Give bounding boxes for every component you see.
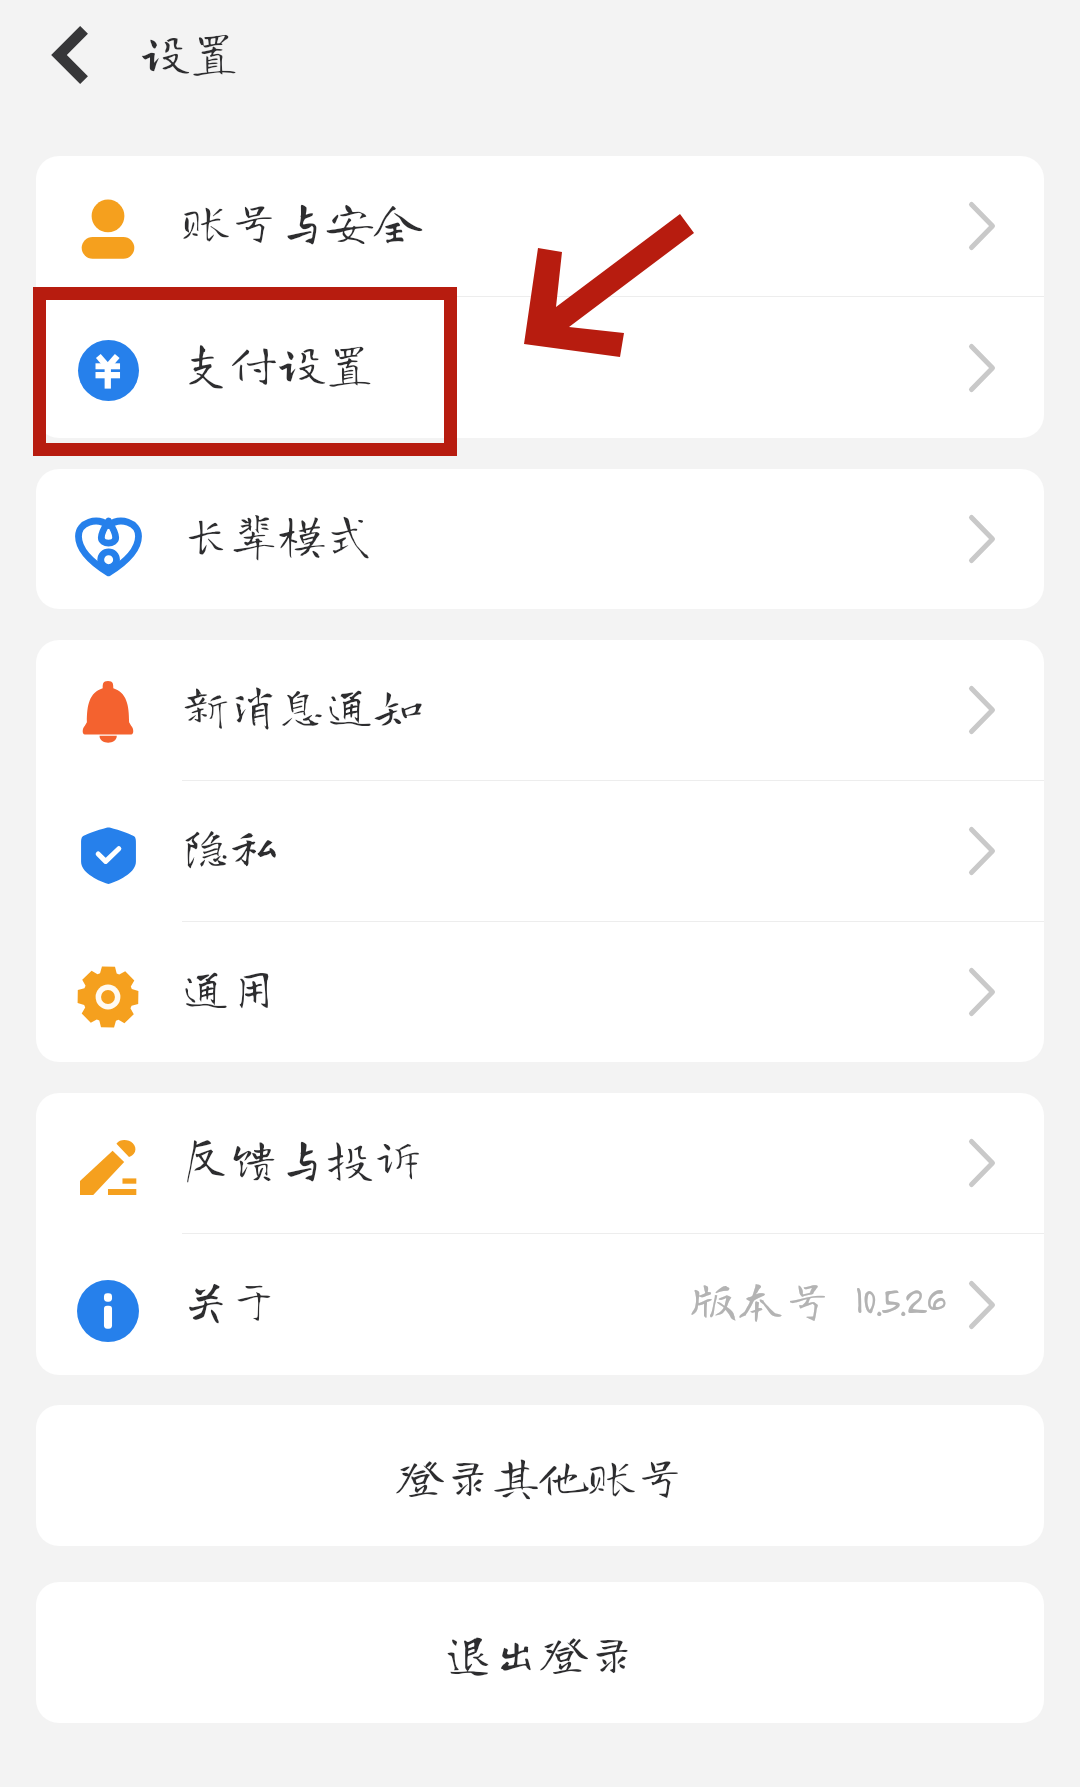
staticText: 隐私 <box>182 822 279 870</box>
staticText: 长辈模式 <box>182 510 375 558</box>
staticText: 关于 <box>182 1276 279 1324</box>
staticText: 登录其他账号 <box>396 1452 685 1500</box>
button[interactable]: 新消息通知 <box>36 640 1044 780</box>
button[interactable]: 登录其他账号 <box>36 1405 1044 1546</box>
button[interactable]: 关于 <box>36 1234 1044 1375</box>
staticText: 设置 <box>141 27 240 76</box>
button[interactable]: 隐私 <box>36 781 1044 921</box>
button[interactable]: 退出登录 <box>36 1582 1044 1723</box>
staticText: 支付设置 <box>182 339 375 387</box>
staticText: 退出登录 <box>444 1629 637 1677</box>
button[interactable]: Back <box>23 0 119 118</box>
button[interactable]: 账号与安全 <box>36 156 1044 296</box>
staticText: 通用 <box>182 963 279 1011</box>
staticText: 账号与安全 <box>182 197 423 245</box>
staticText: 反馈与投诉 <box>182 1134 423 1182</box>
button[interactable]: 通用 <box>36 922 1044 1062</box>
staticText: 版本号 10.5.26 <box>690 1276 944 1323</box>
button[interactable]: 长辈模式 <box>36 469 1044 609</box>
staticText: 新消息通知 <box>182 681 423 729</box>
button[interactable]: 反馈与投诉 <box>36 1093 1044 1233</box>
button[interactable]: 支付设置 <box>36 297 1044 438</box>
